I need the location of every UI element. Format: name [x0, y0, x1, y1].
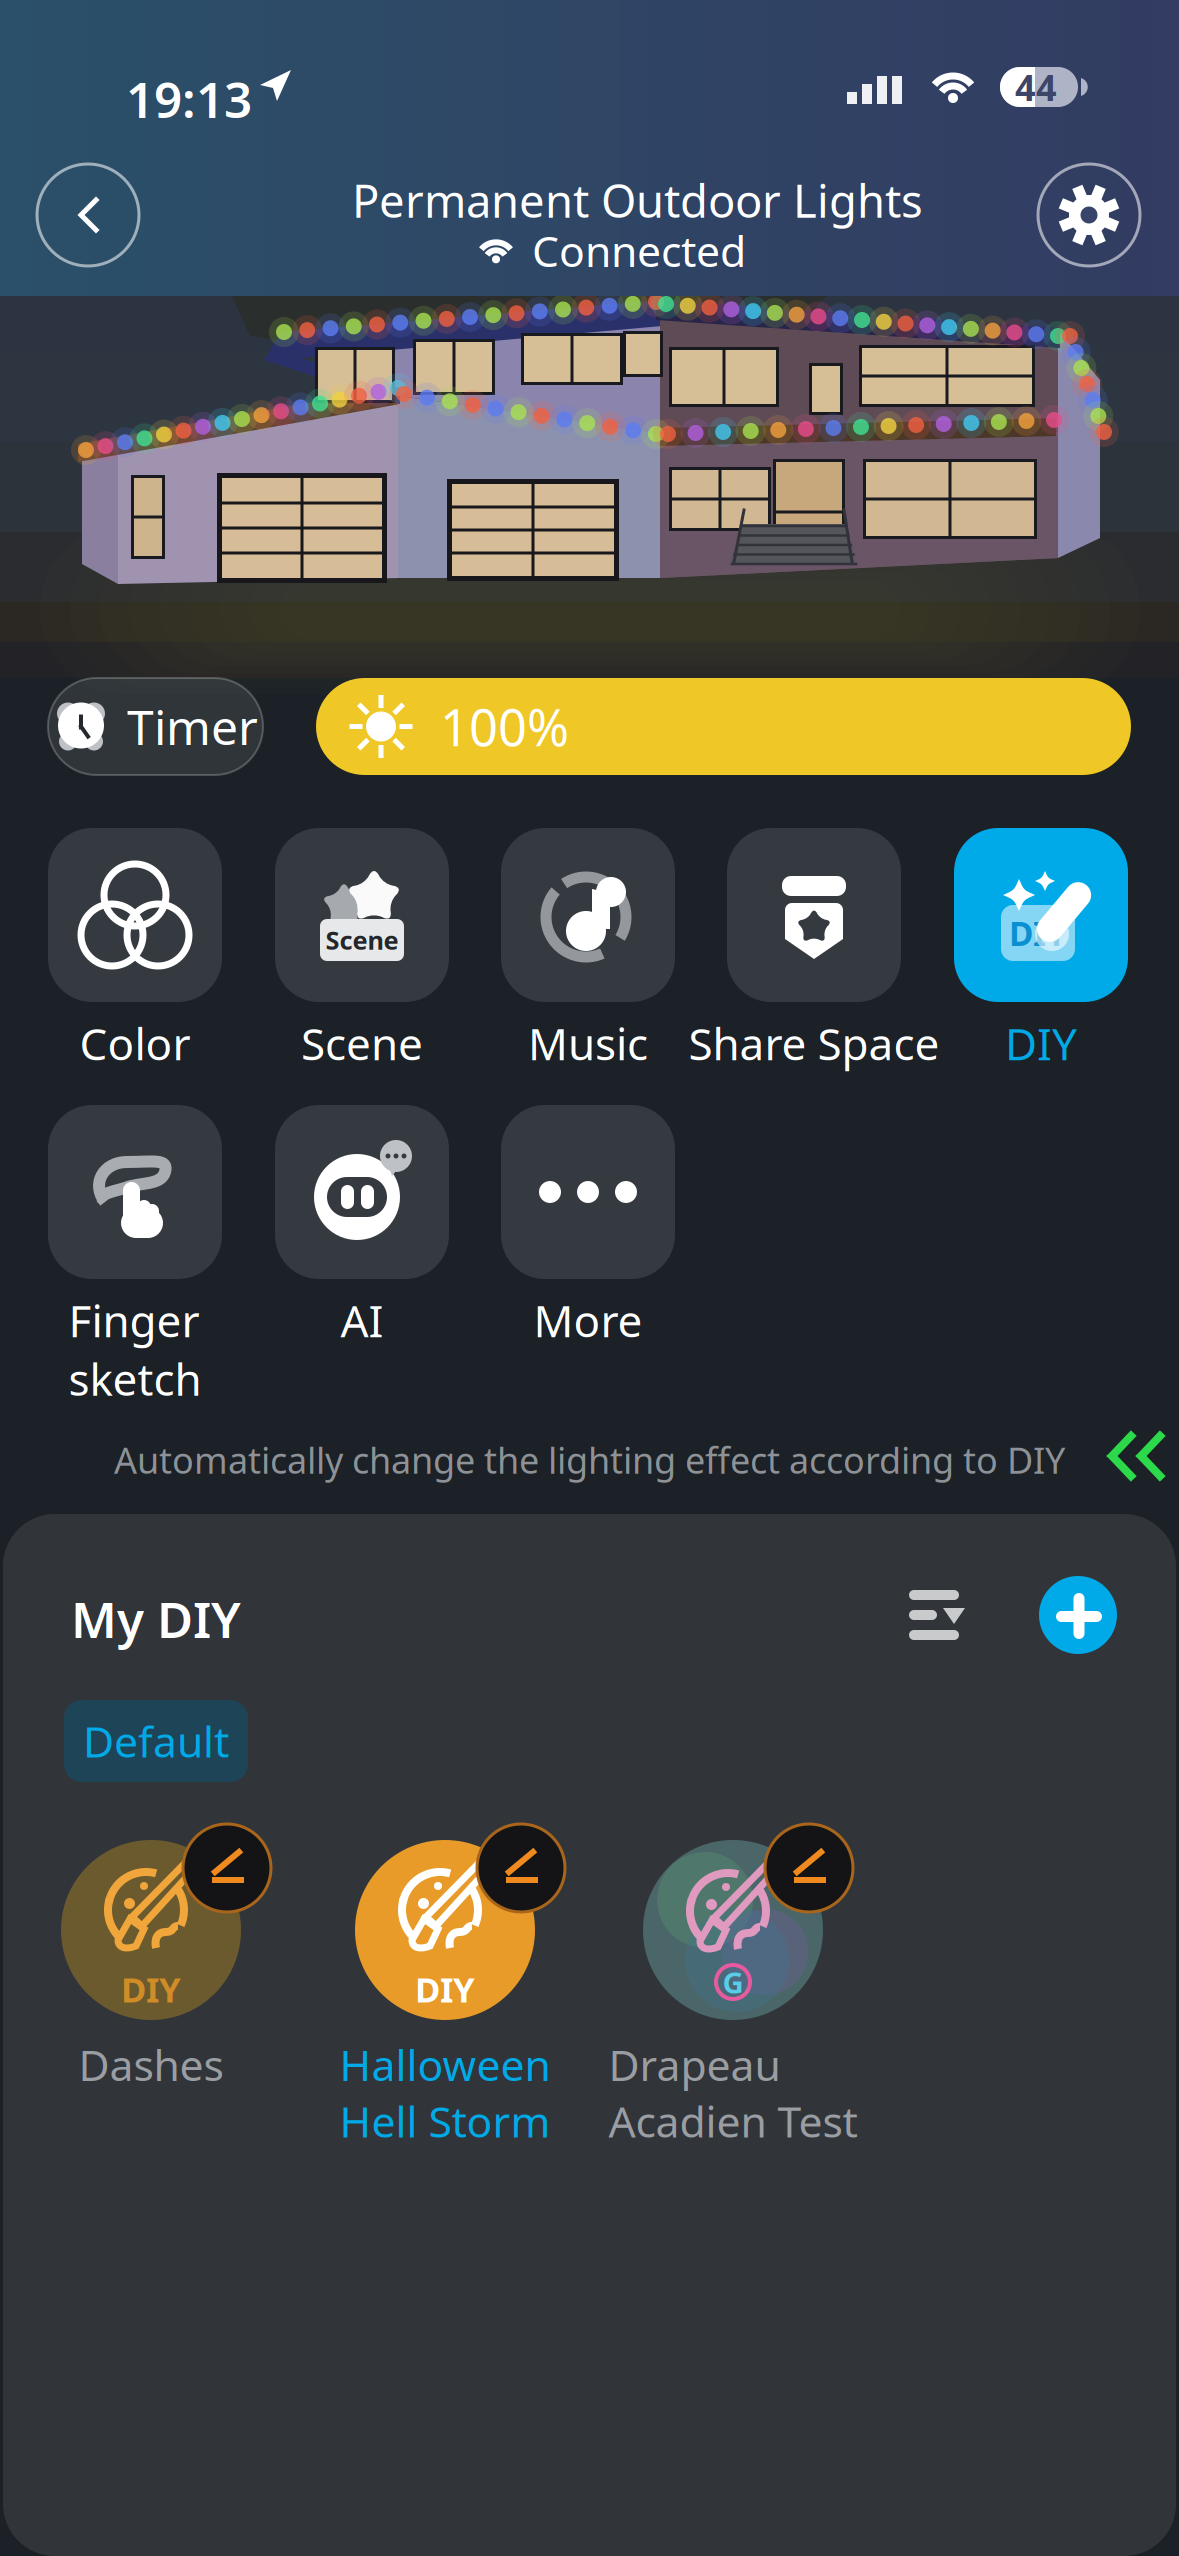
staticText: Share Space — [688, 1014, 939, 1072]
staticText: Color — [79, 1014, 190, 1072]
staticText: DIY — [121, 1966, 181, 2012]
button[interactable]: Music — [501, 828, 675, 1098]
button[interactable]: Sort — [909, 1588, 971, 1642]
staticText: Scene — [325, 923, 398, 957]
staticText: Finger sketch — [68, 1291, 201, 1408]
staticText: Dashes — [78, 2036, 223, 2093]
button[interactable]: DIY — [305, 1824, 585, 2154]
staticText: Connected — [532, 222, 746, 279]
staticText: My DIY — [71, 1586, 241, 1651]
button[interactable]: G — [593, 1824, 873, 2154]
staticText: G — [722, 1962, 743, 2001]
button[interactable]: Color — [48, 828, 222, 1098]
staticText: Halloween Hell Storm — [339, 2036, 550, 2149]
staticText: AI — [340, 1291, 383, 1349]
button[interactable]: More — [501, 1105, 675, 1375]
button[interactable]: Settings — [1038, 164, 1140, 266]
staticText: DIY — [415, 1966, 475, 2012]
button[interactable]: Share Space — [727, 828, 901, 1098]
button[interactable]: Scene — [275, 828, 449, 1098]
staticText: Automatically change the lighting effect… — [114, 1436, 1065, 1484]
staticText: 19:13 — [126, 66, 252, 131]
staticText: Default — [83, 1713, 229, 1769]
staticText: Permanent Outdoor Lights — [352, 170, 923, 230]
staticText: Drapeau Acadien Test — [608, 2036, 857, 2149]
button[interactable]: Timer — [48, 678, 263, 775]
staticText: Timer — [127, 695, 258, 758]
staticText: DIY — [1005, 1014, 1077, 1072]
button[interactable]: 100% — [316, 678, 1131, 775]
button[interactable]: Finger sketch — [48, 1105, 222, 1375]
button[interactable]: Back — [37, 164, 139, 266]
button[interactable]: Default — [64, 1700, 248, 1782]
staticText: Scene — [301, 1014, 423, 1072]
button[interactable]: DIY — [954, 828, 1128, 1098]
button[interactable]: DIY — [11, 1824, 291, 2154]
staticText: 44 — [1015, 63, 1057, 111]
button[interactable]: Add — [1039, 1576, 1117, 1654]
button[interactable]: AI — [275, 1105, 449, 1375]
button[interactable]: Collapse — [1100, 1428, 1170, 1484]
staticText: More — [533, 1291, 642, 1349]
staticText: DIY — [1009, 911, 1067, 955]
staticText: 100% — [440, 693, 569, 760]
staticText: Music — [528, 1014, 648, 1072]
